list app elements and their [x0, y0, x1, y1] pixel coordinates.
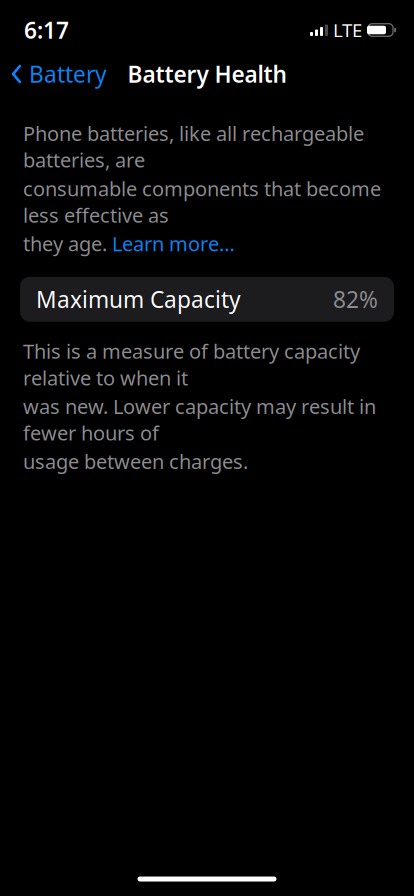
staticText: Phone batteries, like all rechargeable b… [23, 120, 364, 173]
staticText: 6:17 [24, 15, 69, 45]
staticText: 82% [333, 284, 378, 314]
staticText: Battery [29, 59, 107, 89]
staticText: Battery Health [127, 59, 286, 89]
button[interactable]: Learn more… [112, 230, 235, 257]
staticText: This is a measure of battery capacity re… [23, 338, 360, 391]
staticText: usage between charges. [23, 448, 248, 475]
staticText: was new. Lower capacity may result in fe… [23, 393, 376, 446]
button[interactable]: Battery [0, 53, 107, 95]
staticText: Learn more… [112, 230, 235, 257]
staticText: LTE [333, 18, 362, 42]
staticText: they age. [23, 230, 112, 257]
staticText: consumable components that become less e… [23, 175, 381, 228]
staticText: Maximum Capacity [36, 284, 241, 314]
button[interactable]: Maximum Capacity [20, 277, 394, 322]
